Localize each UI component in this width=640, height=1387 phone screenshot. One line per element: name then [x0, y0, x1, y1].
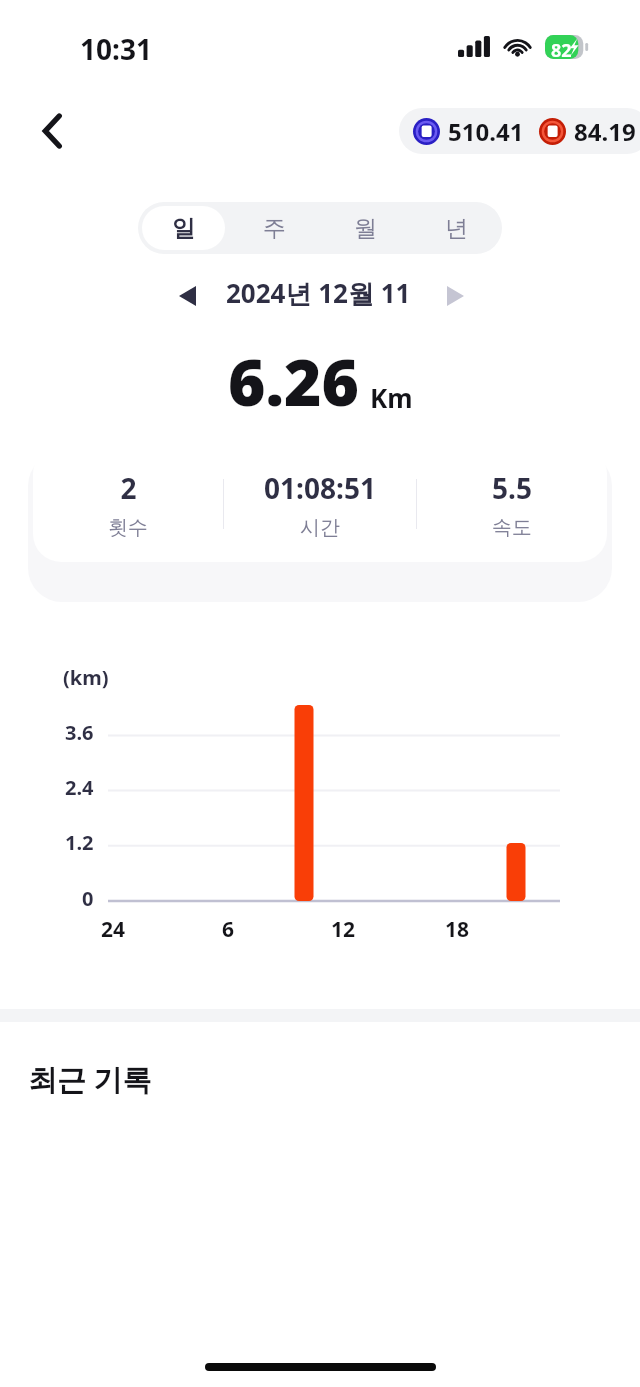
- staticText: Km: [370, 380, 413, 415]
- staticText: 01:08:51: [264, 469, 376, 507]
- button[interactable]: 주: [233, 206, 316, 250]
- staticText: 510.41: [448, 115, 524, 148]
- button[interactable]: 일: [142, 206, 225, 250]
- button[interactable]: 510.41: [399, 108, 640, 154]
- button[interactable]: 2024년 12월 11일: [226, 275, 414, 315]
- button[interactable]: Previous day: [168, 277, 206, 315]
- staticText: 횟수: [108, 515, 148, 540]
- staticText: 시간: [300, 515, 340, 540]
- staticText: 5.5: [492, 469, 532, 507]
- staticText: 2: [120, 469, 137, 507]
- button[interactable]: Next day: [436, 277, 474, 315]
- staticText: 3.6: [65, 719, 94, 745]
- staticText: 6.26: [228, 338, 360, 425]
- staticText: 24: [101, 915, 126, 943]
- staticText: 최근 기록: [28, 1059, 152, 1099]
- staticText: 속도: [492, 515, 532, 540]
- staticText: 2.4: [65, 774, 94, 800]
- button[interactable]: 월: [324, 206, 407, 250]
- staticText: 1.2: [65, 829, 94, 855]
- staticText: 84.19: [574, 115, 636, 148]
- staticText: 주: [263, 214, 286, 243]
- staticText: 18: [445, 915, 470, 943]
- staticText: 82: [551, 38, 572, 63]
- staticText: 일: [172, 214, 195, 243]
- button[interactable]: 2: [33, 446, 607, 562]
- staticText: 2024년 12월 11일: [226, 275, 414, 315]
- staticText: 6: [222, 915, 235, 943]
- staticText: 10:31: [80, 30, 152, 68]
- staticText: 년: [445, 214, 468, 243]
- staticText: (km): [63, 664, 109, 691]
- staticText: 0: [82, 885, 94, 911]
- button[interactable]: Back: [26, 104, 80, 158]
- staticText: 월: [354, 214, 377, 243]
- staticText: 12: [331, 915, 356, 943]
- button[interactable]: 년: [415, 206, 498, 250]
